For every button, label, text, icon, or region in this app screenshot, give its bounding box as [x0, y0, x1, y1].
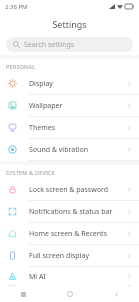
- button[interactable]: Wallpaper: [0, 95, 139, 117]
- button[interactable]: Back: [93, 286, 139, 302]
- staticText: 2:36 PM: [5, 3, 28, 11]
- button[interactable]: Mi AI: [0, 267, 139, 286]
- staticText: Notifications & status bar: [29, 207, 127, 217]
- button[interactable]: Notifications & status bar: [0, 201, 139, 223]
- staticText: Full screen display: [29, 251, 127, 261]
- staticText: Settings: [52, 18, 87, 30]
- staticText: PERSONAL: [6, 63, 36, 70]
- staticText: Themes: [29, 123, 127, 133]
- button[interactable]: Sound & vibration: [0, 139, 139, 161]
- staticText: Mi AI: [29, 272, 127, 282]
- staticText: Wallpaper: [29, 101, 127, 111]
- button[interactable]: Home: [47, 286, 93, 302]
- staticText: Lock screen & password: [29, 185, 127, 195]
- button[interactable]: Lock screen & password: [0, 179, 139, 201]
- staticText: Search settings: [24, 40, 75, 50]
- button[interactable]: Home screen & Recents: [0, 223, 139, 245]
- staticText: SYSTEM & DEVICE: [6, 169, 55, 176]
- staticText: Sound & vibration: [29, 145, 127, 155]
- staticText: Home screen & Recents: [29, 229, 127, 239]
- button[interactable]: Full screen display: [0, 245, 139, 267]
- button[interactable]: Themes: [0, 117, 139, 139]
- button[interactable]: Recents: [0, 286, 47, 302]
- staticText: Display: [29, 79, 127, 89]
- button[interactable]: Display: [0, 73, 139, 95]
- button[interactable]: Search settings: [6, 37, 133, 52]
